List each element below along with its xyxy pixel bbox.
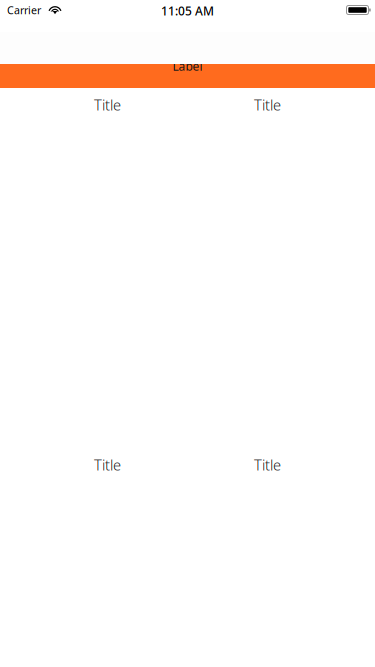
staticText: Title [254, 455, 281, 474]
button[interactable]: Banner [0, 64, 375, 88]
staticText: Title [94, 455, 121, 474]
button[interactable]: Title [187, 448, 347, 667]
button[interactable]: Title [27, 88, 187, 448]
staticText: Title [254, 95, 281, 114]
button[interactable]: Title [27, 448, 187, 667]
button[interactable]: Label [0, 58, 375, 74]
staticText: Carrier [7, 3, 41, 17]
staticText: 11:05 AM [161, 3, 214, 19]
button[interactable]: Title [187, 88, 347, 448]
staticText: Label [172, 58, 202, 74]
staticText: Title [94, 95, 121, 114]
